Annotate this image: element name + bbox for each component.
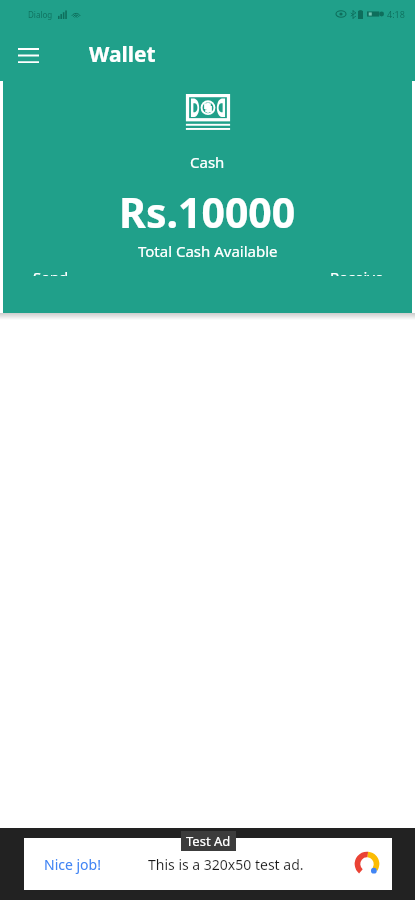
staticText: Send <box>33 267 69 276</box>
staticText: Dialog <box>28 9 53 20</box>
other: AdMob <box>352 849 382 879</box>
staticText: 4:18 <box>387 8 405 20</box>
staticText: Nice job! <box>44 855 101 874</box>
staticText: Rs.10000 <box>119 184 296 240</box>
button[interactable]: Nice job! <box>24 838 392 890</box>
button[interactable]: Receive <box>318 261 396 282</box>
staticText: Test Ad <box>186 832 231 850</box>
staticText: Cash <box>190 152 225 172</box>
staticText: Wallet <box>89 40 156 69</box>
button[interactable]: Send <box>21 261 81 282</box>
staticText: Receive <box>330 267 384 276</box>
button[interactable]: Open navigation menu <box>8 35 48 75</box>
staticText: Total Cash Available <box>138 241 278 261</box>
staticText: This is a 320x50 test ad. <box>148 855 304 874</box>
